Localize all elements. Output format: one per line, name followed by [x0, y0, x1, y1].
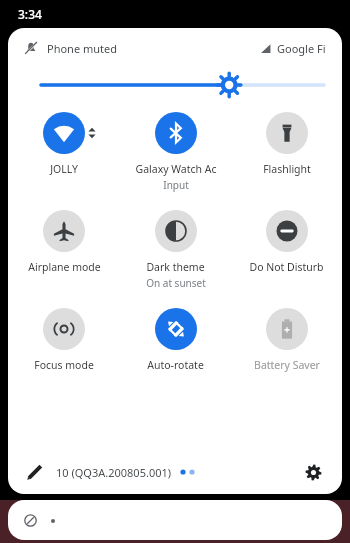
button[interactable]: Brightness — [8, 68, 342, 102]
staticText: Google Fi — [277, 41, 326, 56]
staticText: Dark theme — [146, 260, 205, 274]
button[interactable] — [8, 500, 342, 540]
staticText: Galaxy Watch Ac — [135, 162, 217, 176]
staticText: 10 (QQ3A.200805.001) — [56, 465, 172, 480]
staticText: Input — [163, 178, 189, 192]
staticText: 3:34 — [18, 6, 42, 22]
staticText: Battery Saver — [254, 358, 320, 372]
staticText: Phone muted — [47, 41, 117, 56]
button[interactable]: Dark theme — [120, 210, 231, 290]
button[interactable]: Focus mode — [8, 308, 120, 372]
button[interactable]: Flashlight — [231, 112, 342, 176]
staticText: Do Not Disturb — [249, 260, 324, 274]
button[interactable]: JOLLY — [8, 112, 120, 176]
button[interactable]: Settings — [300, 459, 326, 485]
button[interactable]: Do Not Disturb — [231, 210, 342, 274]
staticText: On at sunset — [146, 276, 206, 290]
staticText: JOLLY — [50, 162, 78, 176]
staticText: Airplane mode — [28, 260, 101, 274]
staticText: Auto-rotate — [147, 358, 204, 372]
staticText: Focus mode — [34, 358, 94, 372]
button[interactable]: Airplane mode — [8, 210, 120, 274]
button[interactable]: Galaxy Watch Ac — [120, 112, 231, 192]
staticText: Flashlight — [263, 162, 311, 176]
button[interactable]: Auto-rotate — [120, 308, 231, 372]
button[interactable]: Battery Saver — [231, 308, 342, 372]
button[interactable]: Edit tiles — [24, 461, 46, 483]
